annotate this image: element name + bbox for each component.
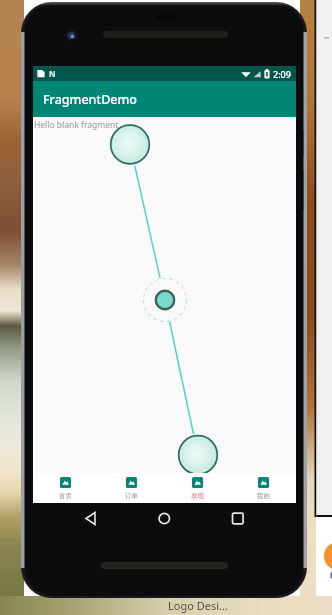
button[interactable]: Recent apps	[227, 508, 248, 529]
staticText: 2:09	[273, 68, 291, 80]
button[interactable]: Home	[154, 508, 175, 529]
staticText: 首页	[59, 492, 72, 500]
button[interactable]: 首页	[33, 473, 98, 503]
staticText: 我的	[257, 492, 270, 500]
button[interactable]: 我的	[230, 473, 296, 503]
staticText: FragmentDemo	[43, 91, 137, 108]
button[interactable]: Back	[80, 508, 101, 529]
button[interactable]: 订单	[98, 473, 164, 503]
staticText: Logo Desi...	[168, 598, 228, 613]
staticText: Hello blank fragment	[34, 119, 119, 131]
staticText: 订单	[125, 492, 138, 500]
staticText: 发现	[191, 492, 204, 500]
button[interactable]: 发现	[164, 473, 230, 503]
staticText: N	[49, 68, 56, 79]
